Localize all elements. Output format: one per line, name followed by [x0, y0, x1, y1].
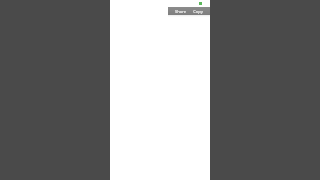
button[interactable]: Copy: [192, 9, 204, 14]
staticText: Copy: [193, 9, 203, 14]
staticText: Share: [175, 9, 186, 14]
button[interactable]: Share: [174, 9, 187, 14]
